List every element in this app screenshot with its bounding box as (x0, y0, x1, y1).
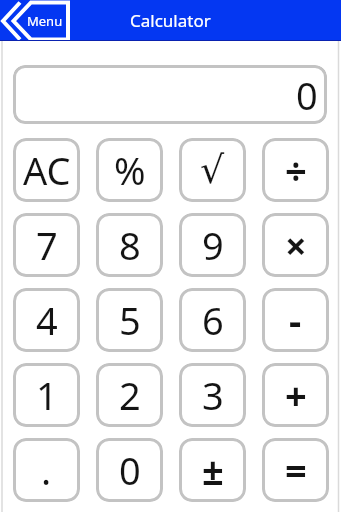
staticText: 7 (36, 219, 58, 271)
button[interactable]: ÷ (262, 138, 329, 202)
button[interactable]: 7 (13, 213, 80, 277)
button[interactable]: . (13, 438, 80, 502)
button[interactable]: - (262, 288, 329, 352)
button[interactable]: + (262, 363, 329, 427)
staticText: = (285, 444, 307, 496)
button[interactable]: % (96, 138, 163, 202)
staticText: 0 (296, 69, 318, 121)
button[interactable]: Menu (0, 0, 74, 41)
button[interactable]: 3 (179, 363, 246, 427)
staticText: % (114, 144, 146, 196)
staticText: 3 (202, 369, 224, 421)
button[interactable]: 2 (96, 363, 163, 427)
button[interactable]: ± (179, 438, 246, 502)
button[interactable]: 9 (179, 213, 246, 277)
button[interactable]: 6 (179, 288, 246, 352)
staticText: AC (23, 144, 71, 196)
button[interactable]: 0 (96, 438, 163, 502)
button[interactable]: 8 (96, 213, 163, 277)
staticText: Calculator (130, 9, 211, 32)
staticText: 5 (119, 294, 141, 346)
staticText: 4 (36, 294, 58, 346)
button[interactable]: 5 (96, 288, 163, 352)
staticText: Menu (27, 12, 63, 30)
staticText: √ (200, 148, 225, 192)
staticText: 2 (119, 369, 141, 421)
staticText: 8 (119, 219, 141, 271)
staticText: 0 (119, 444, 141, 496)
button[interactable]: √ (179, 138, 246, 202)
button[interactable]: 4 (13, 288, 80, 352)
staticText: ÷ (285, 144, 307, 196)
staticText: × (285, 219, 307, 271)
staticText: 9 (202, 219, 224, 271)
button[interactable]: = (262, 438, 329, 502)
staticText: . (41, 444, 52, 496)
staticText: ± (202, 444, 224, 496)
staticText: - (289, 294, 302, 346)
staticText: 1 (36, 369, 58, 421)
button[interactable]: 1 (13, 363, 80, 427)
staticText: 6 (202, 294, 224, 346)
staticText: + (285, 369, 307, 421)
button[interactable]: AC (13, 138, 80, 202)
button[interactable]: × (262, 213, 329, 277)
